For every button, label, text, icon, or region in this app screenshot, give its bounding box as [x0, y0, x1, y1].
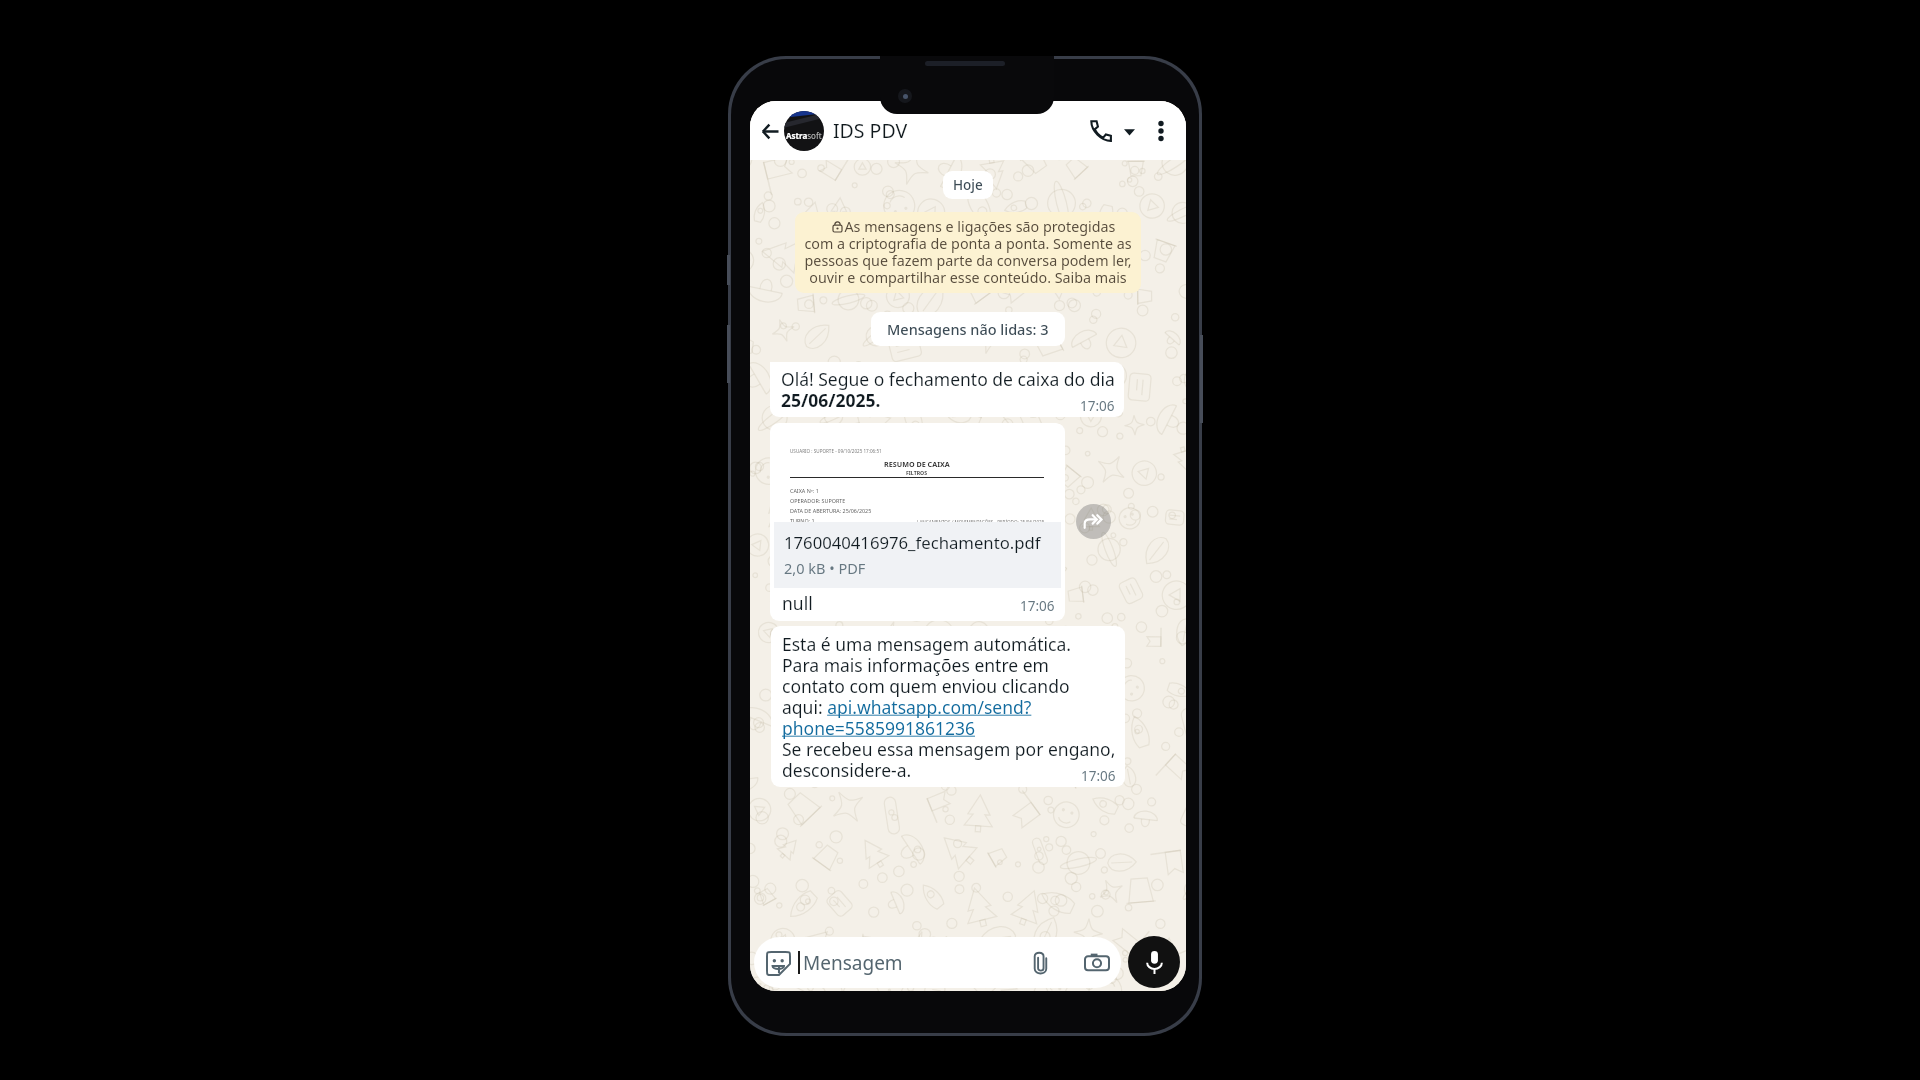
- staticText: FILTROS: [906, 469, 928, 476]
- button[interactable]: Mensagens não lidas: 3: [871, 312, 1065, 346]
- button[interactable]: Gravar áudio: [1128, 936, 1180, 988]
- staticText: null: [782, 591, 813, 615]
- button[interactable]: Anexar: [1028, 950, 1054, 976]
- staticText: 2,0 kB • PDF: [784, 558, 866, 578]
- staticText: TURNO: 1: [790, 517, 815, 522]
- button[interactable]: Encaminhar: [1076, 504, 1111, 539]
- staticText: USUARIO : SUPORTE - 09/10/2025 17:06:51: [790, 448, 882, 454]
- button[interactable]: Mais opções: [1143, 113, 1179, 149]
- staticText: Olá! Segue o fechamento de caixa do dia …: [781, 367, 1115, 412]
- staticText: CAIXA Nº: 1: [790, 487, 819, 494]
- button[interactable]: Emojis e figurinhas: [754, 937, 1121, 988]
- button[interactable]: Foto do perfil: [784, 111, 824, 151]
- button[interactable]: Esta é uma mensagem automática. Para mai…: [771, 626, 1125, 787]
- staticText: 17:06: [1080, 397, 1115, 415]
- staticText: 17:06: [1081, 767, 1116, 785]
- staticText: Hoje: [953, 176, 983, 194]
- button[interactable]: Olá! Segue o fechamento de caixa do dia …: [770, 362, 1124, 417]
- button[interactable]: Hoje: [943, 171, 993, 199]
- staticText: IDS PDV: [833, 117, 908, 144]
- staticText: LANÇAMENTOS / MOVIMENTAÇÕES - PERÍODO: 2…: [917, 519, 1045, 522]
- staticText: 17:06: [1020, 597, 1055, 615]
- button[interactable]: As mensagens e ligações são protegidas c…: [795, 212, 1141, 293]
- button[interactable]: Câmera: [1084, 950, 1110, 976]
- button[interactable]: USUARIO : SUPORTE - 09/10/2025 17:06:51: [770, 423, 1065, 621]
- staticText: RESUMO DE CAIXA: [884, 459, 950, 469]
- button[interactable]: Opções de chamada: [1116, 118, 1142, 144]
- button[interactable]: Ligar: [1086, 111, 1116, 151]
- button[interactable]: Voltar: [756, 113, 784, 149]
- staticText: Astrasoft: [786, 130, 822, 141]
- button[interactable]: Emojis e figurinhas: [765, 950, 791, 976]
- staticText: DATA DE ABERTURA: 25/06/2025: [790, 507, 872, 514]
- staticText: Mensagens não lidas: 3: [887, 319, 1049, 339]
- staticText: OPERADOR: SUPORTE: [790, 497, 846, 504]
- staticText: Esta é uma mensagem automática. Para mai…: [782, 632, 1116, 782]
- staticText: Mensagem: [803, 950, 903, 976]
- staticText: 1760040416976_fechamento.pdf: [784, 531, 1041, 554]
- staticText: As mensagens e ligações são protegidas c…: [804, 217, 1132, 288]
